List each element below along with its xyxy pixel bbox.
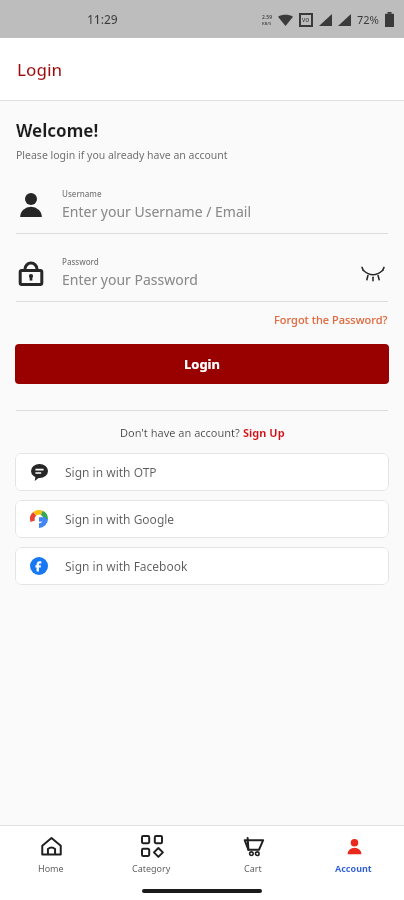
- staticText: Sign in with Facebook: [65, 558, 188, 574]
- button[interactable]: Sign in with OTP: [15, 453, 389, 491]
- button[interactable]: Home: [0, 826, 101, 882]
- staticText: Login: [17, 58, 63, 81]
- staticText: Sign Up: [243, 425, 285, 440]
- button[interactable]: Sign in with Google: [15, 500, 389, 538]
- button[interactable]: Don't have an account?: [120, 425, 285, 440]
- button[interactable]: Category: [101, 826, 202, 882]
- staticText: Sign in with Google: [65, 511, 175, 527]
- staticText: Cart: [244, 862, 262, 874]
- button[interactable]: Show password: [358, 258, 388, 288]
- button[interactable]: Login: [15, 344, 389, 384]
- staticText: 11:29: [87, 11, 118, 27]
- staticText: 2.59: [262, 14, 272, 21]
- staticText: Home: [38, 862, 64, 874]
- staticText: Sign in with OTP: [65, 464, 157, 480]
- staticText: Enter your Username / Email: [62, 202, 252, 221]
- staticText: Forgot the Password?: [274, 312, 388, 327]
- staticText: Please login if you already have an acco…: [16, 148, 228, 162]
- button[interactable]: Cart: [202, 826, 303, 882]
- staticText: Username: [62, 188, 102, 199]
- staticText: Welcome!: [16, 119, 99, 142]
- staticText: Login: [184, 355, 220, 373]
- staticText: VO: [302, 17, 310, 24]
- button[interactable]: Sign in with Facebook: [15, 547, 389, 585]
- staticText: KB/S: [262, 21, 272, 26]
- button[interactable]: Forgot the Password?: [0, 312, 388, 327]
- staticText: 72%: [357, 12, 379, 27]
- staticText: Category: [132, 862, 171, 874]
- staticText: Enter your Password: [62, 270, 198, 289]
- button[interactable]: Account: [303, 826, 404, 882]
- staticText: Don't have an account?: [120, 425, 243, 440]
- staticText: Account: [335, 862, 372, 874]
- staticText: Password: [62, 256, 99, 267]
